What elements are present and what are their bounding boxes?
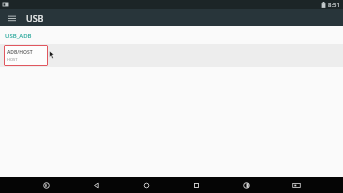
button[interactable]: ADB/HOST — [4, 45, 48, 66]
button[interactable]: Recent apps — [171, 177, 221, 193]
button[interactable]: Volume down — [22, 177, 71, 193]
staticText: ADB/HOST — [7, 49, 33, 56]
button[interactable]: Screenshot — [271, 177, 321, 193]
button[interactable]: Volume up — [221, 177, 271, 193]
button[interactable]: Home — [121, 177, 171, 193]
button[interactable]: Back — [71, 177, 121, 193]
staticText: 8:51 — [328, 1, 340, 9]
staticText: HOST — [7, 57, 18, 62]
button[interactable]: Open navigation menu — [5, 11, 19, 25]
staticText: USB — [26, 12, 44, 24]
staticText: USB_ADB — [5, 32, 32, 40]
